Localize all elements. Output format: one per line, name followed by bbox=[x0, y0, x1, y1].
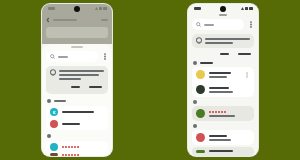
button[interactable] bbox=[87, 84, 104, 90]
button[interactable] bbox=[192, 130, 254, 145]
staticText: K bbox=[53, 110, 56, 115]
button[interactable] bbox=[218, 51, 231, 57]
button[interactable] bbox=[46, 118, 108, 130]
button[interactable] bbox=[101, 19, 108, 21]
button[interactable] bbox=[46, 153, 108, 156]
button[interactable] bbox=[236, 51, 253, 57]
button[interactable]: More options bbox=[247, 21, 254, 28]
button[interactable]: Back bbox=[46, 18, 50, 22]
button[interactable] bbox=[192, 147, 254, 156]
button[interactable]: K bbox=[46, 106, 108, 118]
button[interactable] bbox=[69, 84, 82, 90]
button[interactable]: Row options bbox=[244, 72, 250, 78]
button[interactable] bbox=[192, 82, 254, 97]
button[interactable] bbox=[192, 106, 254, 121]
button[interactable]: More options bbox=[101, 53, 108, 60]
button[interactable] bbox=[46, 141, 108, 153]
button[interactable] bbox=[46, 51, 98, 62]
button[interactable]: Row options bbox=[192, 67, 254, 82]
button[interactable] bbox=[192, 19, 244, 30]
